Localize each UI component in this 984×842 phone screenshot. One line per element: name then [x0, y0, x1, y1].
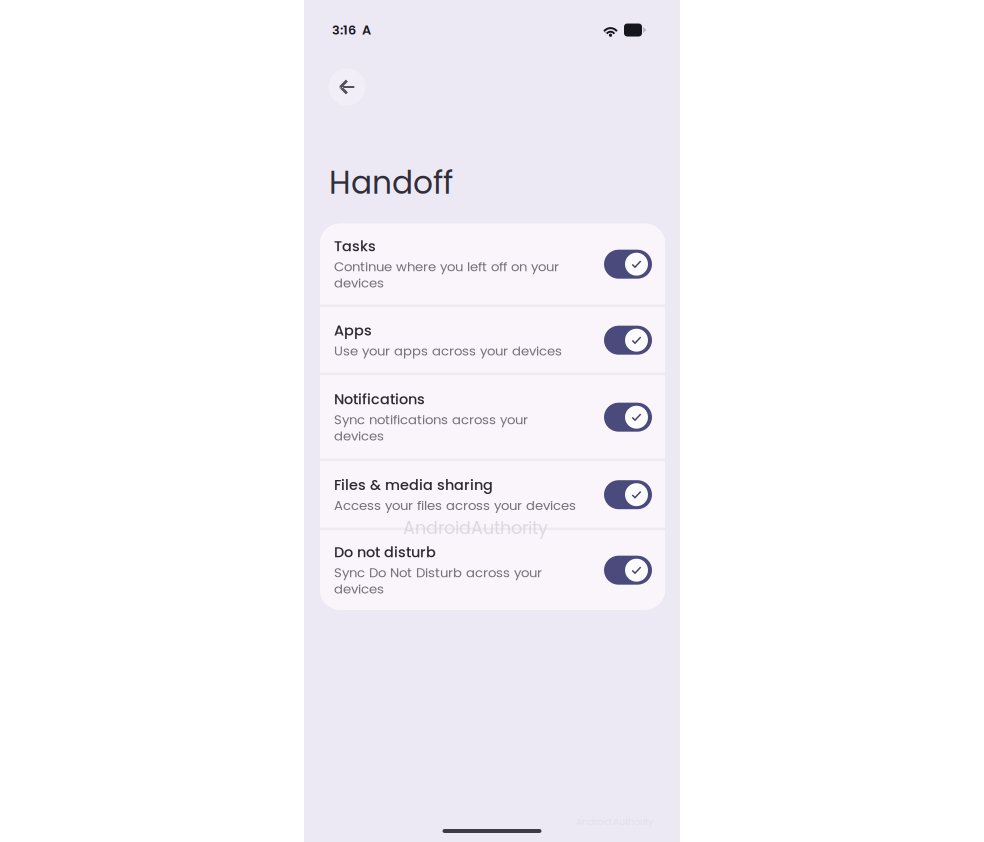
staticText: devices	[334, 427, 384, 445]
staticText: A	[362, 21, 371, 39]
staticText: Continue where you left off on your	[334, 257, 559, 276]
button[interactable]: Notifications	[320, 376, 665, 459]
staticText: Sync Do Not Disturb across your	[334, 563, 542, 582]
staticText: devices	[334, 274, 384, 292]
staticText: Do not disturb	[334, 542, 436, 562]
button[interactable]: Back	[327, 67, 367, 107]
button[interactable]: Do not disturb	[320, 531, 665, 610]
staticText: Sync notifications across your	[334, 410, 528, 429]
button[interactable]: Tasks	[320, 224, 665, 305]
staticText: Access your files across your devices	[334, 496, 576, 514]
staticText: 3:16	[332, 21, 356, 39]
staticText: Files & media sharing	[334, 475, 493, 495]
staticText: Handoff	[329, 161, 453, 205]
staticText: AndroidAuthority	[403, 516, 548, 540]
staticText: Apps	[334, 320, 372, 341]
button[interactable]: Apps	[320, 308, 665, 373]
staticText: Notifications	[334, 389, 425, 409]
staticText: devices	[334, 580, 384, 598]
staticText: Tasks	[334, 236, 376, 256]
staticText: Use your apps across your devices	[334, 341, 562, 360]
button[interactable]: Files & media sharing	[320, 462, 665, 528]
